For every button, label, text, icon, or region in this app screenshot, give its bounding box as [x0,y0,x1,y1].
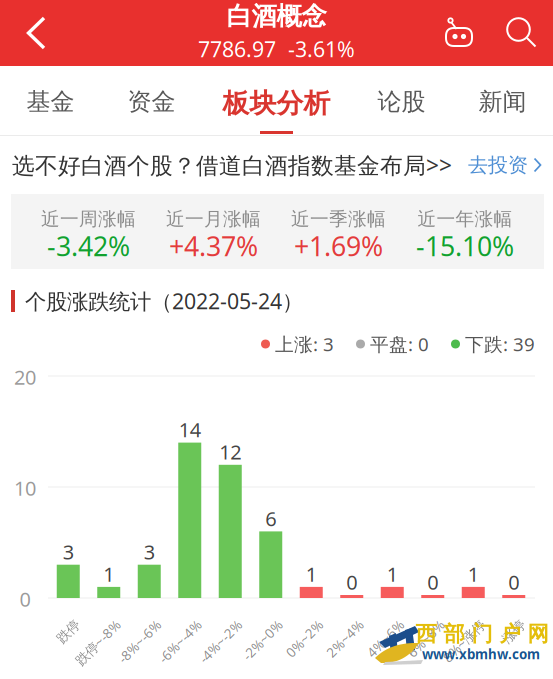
staticText: 0 [346,569,357,595]
staticText: 涨停 [491,617,517,633]
staticText: -2%~0% [224,616,274,634]
button[interactable]: 资金 [101,66,202,136]
staticText: 板块分析 [222,87,330,120]
staticText: -3.42% [47,228,130,264]
staticText: 3 [144,538,155,565]
staticText: 4%~6% [349,616,395,634]
button[interactable]: 板块分析 [202,66,351,136]
staticText: 西 [415,621,436,647]
staticText: 跌停 [45,617,71,633]
staticText: 6 [265,505,276,532]
staticText: www.xbmhw.com [422,645,540,663]
staticText: 近一季涨幅 [291,207,386,230]
staticText: 8%~涨停 [423,616,476,634]
staticText: 0 [427,569,438,595]
staticText: 门 [471,621,492,647]
staticText: 下跌: 39 [465,332,535,356]
staticText: 网 [527,621,548,647]
staticText: 选不好白酒个股？借道白酒指数基金布局>> [12,150,452,180]
staticText: 平盘: 0 [370,332,429,356]
staticText: 0%~2% [268,616,314,634]
staticText: +4.37% [169,228,258,264]
staticText: 部 [443,621,464,647]
staticText: 近一年涨幅 [417,207,512,230]
staticText: -15.10% [416,228,514,264]
button[interactable]: Back [0,6,72,60]
button[interactable]: 选不好白酒个股？借道白酒指数基金布局>> [0,136,553,194]
staticText: 个股涨跌统计（2022-05-24） [25,287,303,315]
staticText: 1 [306,561,317,587]
staticText: 6%~8% [390,616,436,634]
staticText: 2%~4% [309,616,355,634]
staticText: 0 [19,586,30,612]
staticText: 1 [387,561,398,587]
staticText: 近一周涨幅 [41,207,136,230]
staticText: 户 [499,621,520,647]
button[interactable]: Assistant [427,0,491,66]
staticText: 基金 [26,87,74,116]
staticText: 20 [14,364,36,390]
staticText: 3 [63,538,74,565]
staticText: 上涨: 3 [275,332,334,356]
staticText: 0 [508,569,519,595]
staticText: 去投资 [468,153,528,177]
staticText: +1.69% [294,228,383,264]
staticText: 白酒概念 [226,1,326,32]
staticText: 跌停~-8% [55,616,112,634]
staticText: 1 [468,561,479,587]
staticText: -6%~-4% [139,616,193,634]
staticText: 14 [179,416,201,443]
button[interactable]: 论股 [351,66,452,136]
staticText: 资金 [127,87,175,116]
staticText: 论股 [377,87,425,116]
staticText: 近一月涨幅 [166,207,261,230]
staticText: 7786.97 -3.61% [198,35,355,63]
staticText: 12 [219,438,241,465]
staticText: -4%~-2% [179,616,233,634]
staticText: 10 [14,475,36,501]
button[interactable]: 新闻 [452,66,553,136]
button[interactable]: Search [491,0,553,66]
staticText: 1 [103,561,114,587]
button[interactable]: 基金 [0,66,101,136]
staticText: 新闻 [478,87,526,116]
staticText: -8%~-6% [98,616,152,634]
